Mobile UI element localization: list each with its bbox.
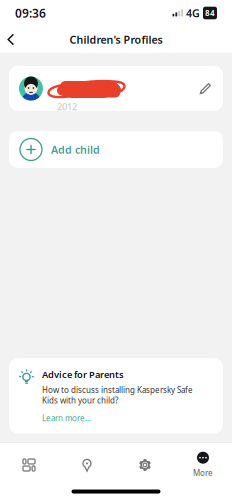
staticText: How to discuss installing Kaspersky Safe… — [42, 384, 193, 406]
staticText: 84 — [205, 8, 215, 18]
button[interactable]: Location — [58, 443, 116, 477]
staticText: 2012 — [57, 100, 77, 113]
staticText: Advice for Parents — [42, 368, 124, 380]
staticText: Add child — [51, 142, 100, 157]
staticText: More — [193, 468, 213, 478]
staticText: Learn more... — [42, 413, 91, 423]
button[interactable]: Settings — [116, 443, 174, 477]
staticText: 09:36 — [15, 5, 46, 21]
button[interactable]: Dashboard — [0, 443, 58, 477]
button[interactable]: 2012 — [9, 66, 223, 111]
button[interactable]: Add child — [9, 131, 223, 168]
staticText: Children's Profiles — [69, 32, 162, 47]
staticText: 4G — [186, 6, 200, 20]
button[interactable]: Back — [0, 26, 25, 52]
button[interactable]: Learn more... — [42, 406, 91, 423]
button[interactable]: More — [174, 443, 232, 477]
